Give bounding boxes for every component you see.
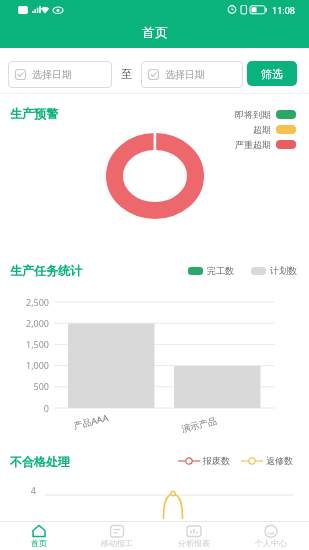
staticText: 11:08 <box>272 4 296 16</box>
staticText: 至 <box>121 67 132 81</box>
staticText: 选择日期 <box>32 68 72 81</box>
staticText: 返修数 <box>266 455 293 466</box>
staticText: 分析报表 <box>178 538 210 548</box>
button[interactable]: 分析报表 <box>155 522 232 550</box>
staticText: 演示产品 <box>180 415 218 434</box>
button[interactable]: 移动报工 <box>78 522 155 550</box>
staticText: 1,000 <box>0 359 49 371</box>
staticText: 生产任务统计 <box>10 263 82 278</box>
staticText: 选择日期 <box>165 68 205 81</box>
staticText: 计划数 <box>270 265 297 276</box>
button[interactable]: 首页 <box>0 522 78 550</box>
staticText: 报废数 <box>203 455 230 466</box>
button[interactable]: 个人中心 <box>232 522 309 550</box>
staticText: 完工数 <box>207 265 234 276</box>
staticText: 严重超期 <box>235 139 271 150</box>
staticText: 产品AAA <box>72 411 110 431</box>
button[interactable]: 选择日期 <box>8 61 112 88</box>
staticText: 4 <box>0 484 36 496</box>
staticText: 2,000 <box>0 317 49 329</box>
button[interactable]: 选择日期 <box>141 61 243 88</box>
staticText: 移动报工 <box>101 538 133 548</box>
staticText: 1,500 <box>0 338 49 350</box>
staticText: 首页 <box>31 538 47 548</box>
button[interactable]: 筛选 <box>247 61 297 86</box>
staticText: 即将到期 <box>235 109 271 120</box>
staticText: 超期 <box>253 124 271 135</box>
staticText: 生产预警 <box>10 106 58 121</box>
staticText: 2,500 <box>0 296 49 308</box>
staticText: 500 <box>0 380 49 392</box>
staticText: 首页 <box>142 24 168 40</box>
staticText: 不合格处理 <box>10 454 70 469</box>
staticText: 个人中心 <box>255 538 287 548</box>
staticText: 0 <box>0 402 49 414</box>
staticText: 筛选 <box>261 67 283 81</box>
